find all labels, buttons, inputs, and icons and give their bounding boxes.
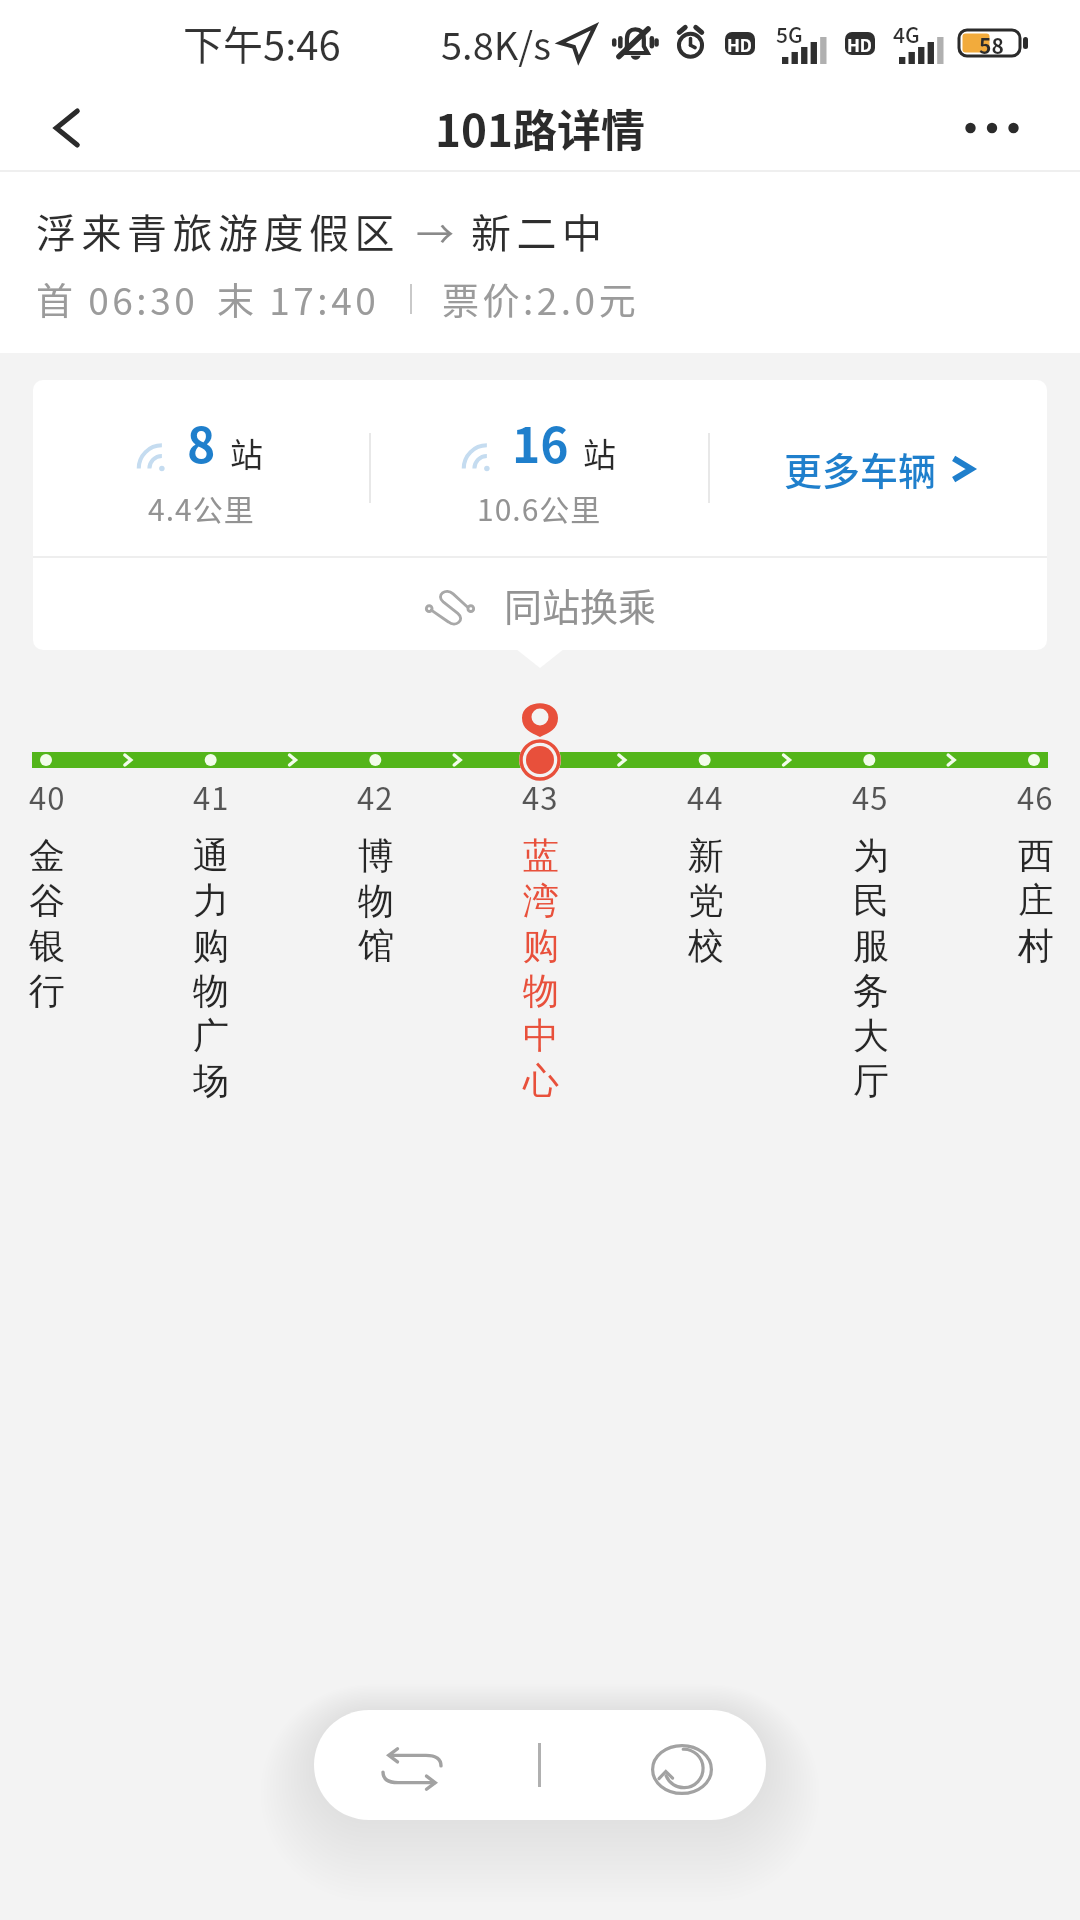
staticText: 首 06:30 (36, 272, 199, 326)
staticText: 新二中 (471, 202, 608, 260)
staticText: 浮来青旅游度假区 (36, 202, 400, 260)
staticText: 新 党 校 (688, 833, 724, 968)
staticText: → (416, 204, 455, 259)
staticText: 为 民 服 务 大 厅 (853, 833, 889, 1103)
staticText: 42 (357, 774, 394, 819)
staticText: 金 谷 银 行 (29, 833, 65, 1013)
staticText: 通 力 购 物 广 场 (193, 833, 229, 1103)
button[interactable]: 16 (371, 380, 708, 556)
staticText: 站 (230, 429, 263, 477)
button[interactable]: 41 (129, 774, 293, 1103)
button[interactable]: More options (950, 86, 1034, 170)
staticText: 博 物 馆 (358, 833, 394, 968)
staticText: 40 (29, 774, 66, 819)
button[interactable]: 45 (788, 774, 953, 1103)
staticText: 蓝 湾 购 物 中 心 (523, 833, 559, 1103)
button[interactable]: 43 (458, 774, 623, 1103)
staticText: 8 (187, 407, 216, 477)
button[interactable]: 同站换乘 (33, 558, 1047, 650)
staticText: 44 (687, 774, 724, 819)
staticText: 末 17:40 (217, 272, 380, 326)
staticText: 同站换乘 (504, 577, 657, 632)
staticText: HD (727, 32, 753, 55)
staticText: 46 (1017, 774, 1054, 819)
button[interactable]: 44 (623, 774, 788, 968)
staticText: 10.6公里 (477, 486, 602, 529)
staticText: 票价:2.0元 (442, 272, 640, 326)
button[interactable]: Back (26, 86, 110, 170)
staticText: 5.8K/s (441, 16, 551, 71)
staticText: 16 (512, 407, 569, 477)
button[interactable]: Swap direction (314, 1710, 538, 1820)
staticText: 45 (852, 774, 889, 819)
staticText: 5G (776, 19, 803, 49)
staticText: HD (847, 32, 873, 55)
button[interactable]: 40 (0, 774, 129, 1013)
button[interactable]: 更多车辆 (710, 380, 1047, 556)
staticText: 更多车辆 (784, 441, 937, 496)
staticText: 4.4公里 (148, 486, 255, 529)
button[interactable]: 42 (293, 774, 458, 968)
staticText: 43 (522, 774, 559, 819)
button[interactable]: Refresh (541, 1710, 766, 1820)
staticText: 58 (979, 30, 1004, 56)
staticText: 4G (893, 19, 920, 49)
staticText: 下午5:46 (183, 14, 341, 72)
staticText: 41 (193, 774, 230, 819)
button[interactable]: 46 (953, 774, 1080, 968)
button[interactable]: 8 (33, 380, 369, 556)
staticText: 西 庄 村 (1018, 833, 1054, 968)
staticText: 101路详情 (435, 96, 645, 160)
staticText: 站 (583, 429, 616, 477)
